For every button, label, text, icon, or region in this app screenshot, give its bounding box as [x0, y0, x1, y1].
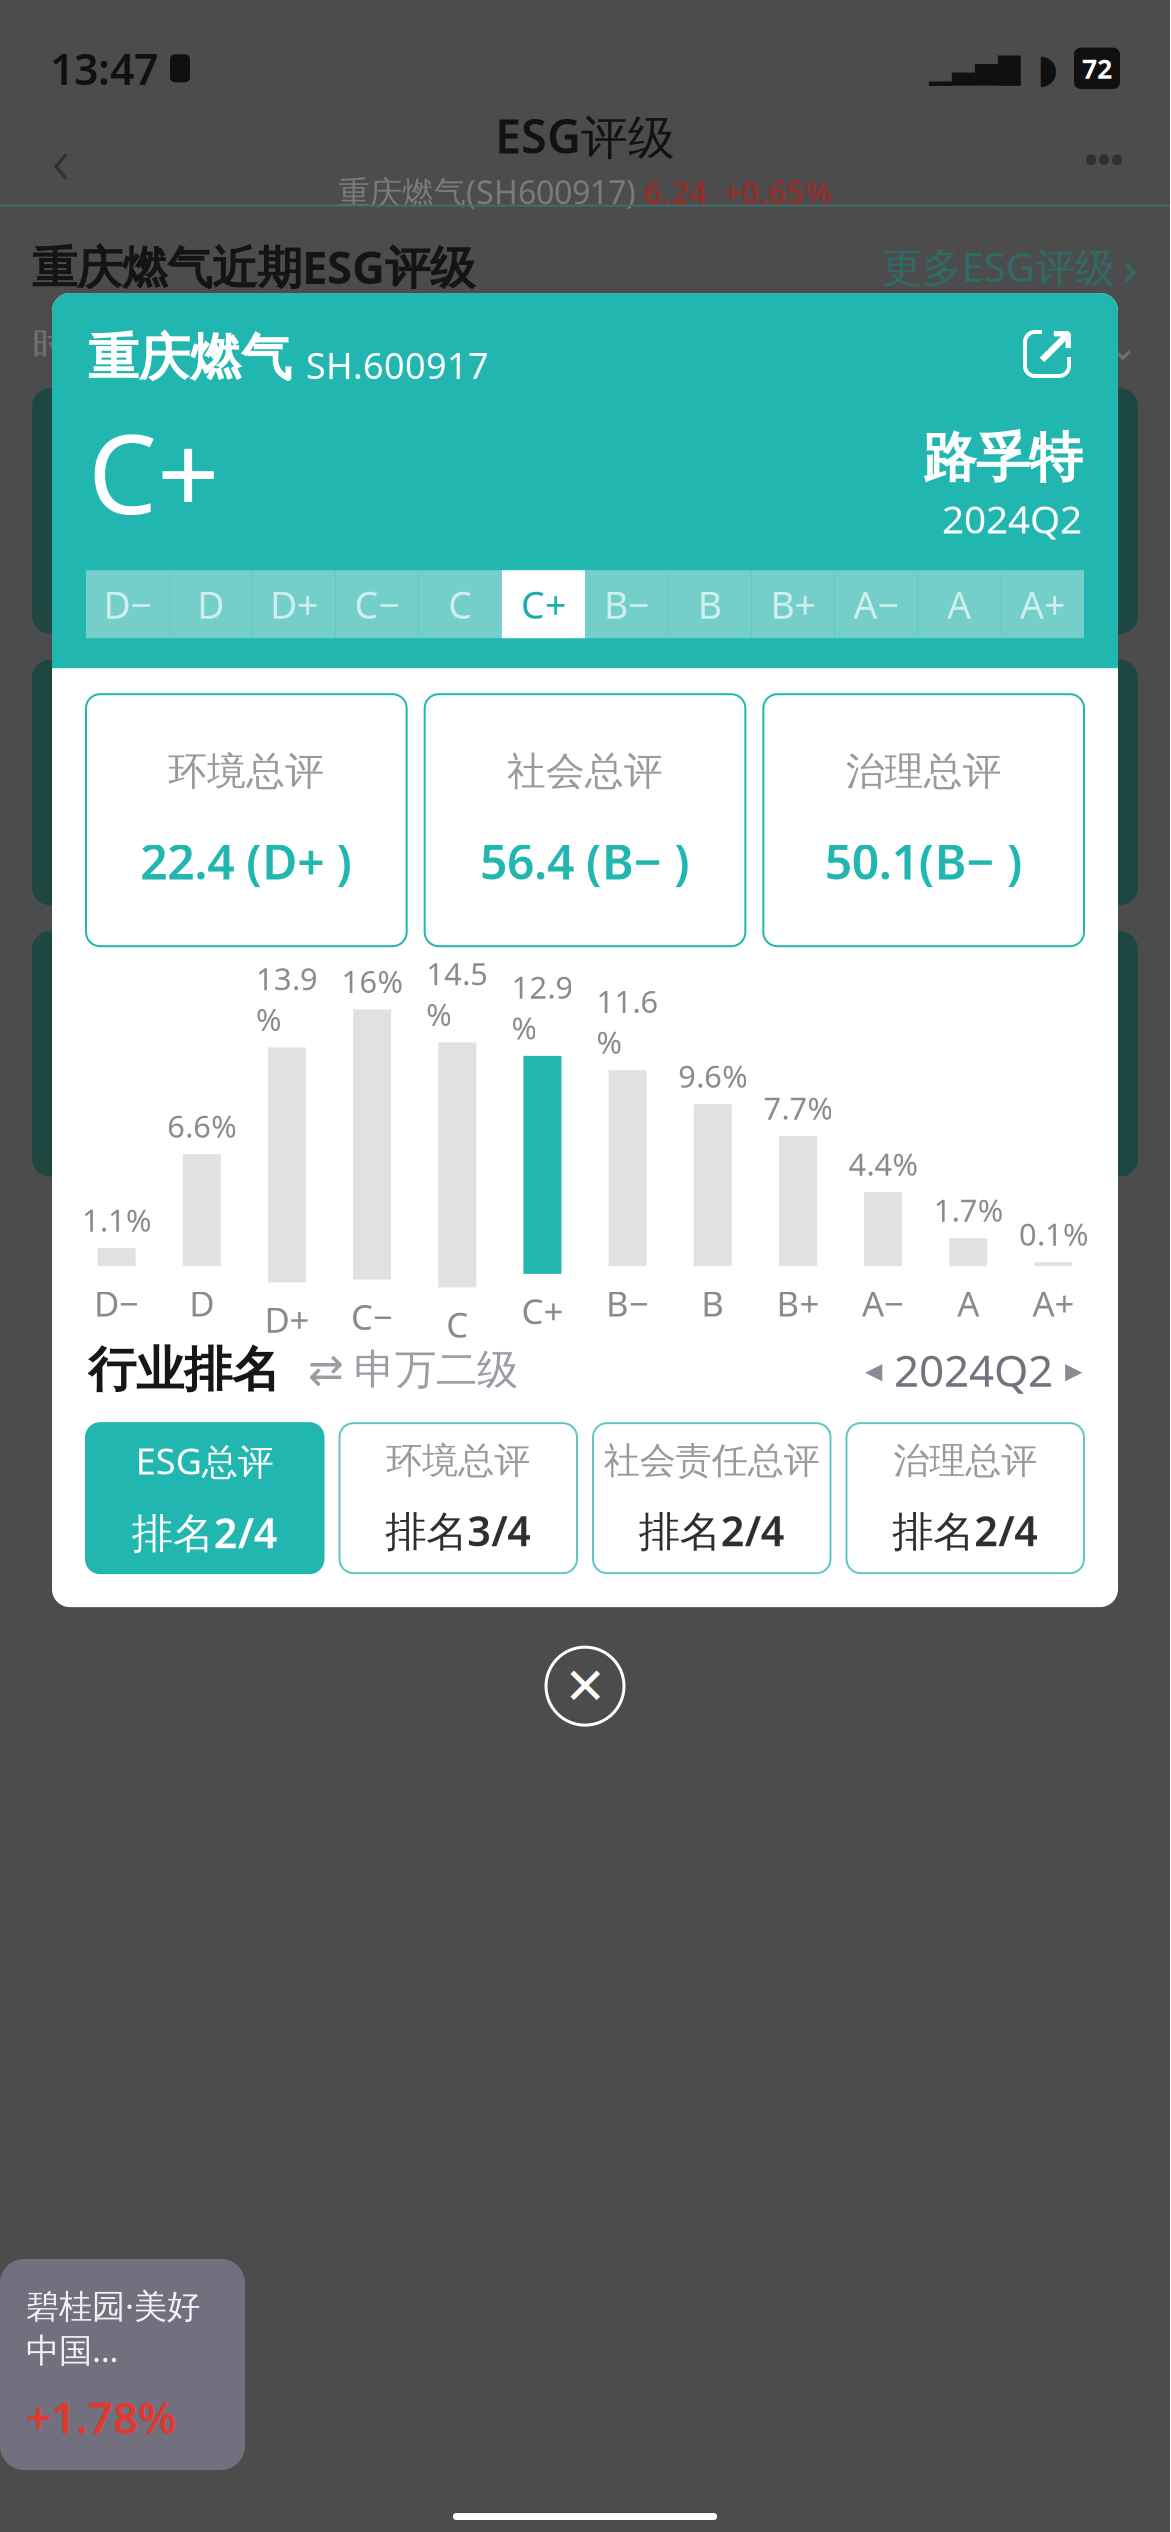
staticText: ‹ [52, 114, 70, 203]
staticText: C [448, 579, 472, 629]
button[interactable]: Next quarter [1065, 1350, 1082, 1389]
staticText: 13.9% [256, 958, 318, 1039]
staticText: D+ [264, 1296, 309, 1342]
staticText: 1.7% [934, 1189, 1003, 1230]
staticText: 排名2/4 [639, 1503, 785, 1558]
staticText: 碧桂园·美好中国… [26, 2283, 200, 2371]
staticText: 7.7% [763, 1087, 832, 1128]
button[interactable]: 更多ESG评级 [882, 235, 1138, 298]
staticText: 筛选 ⌄ [1021, 322, 1138, 368]
staticText: A+ [1020, 579, 1065, 629]
staticText: ▁▃▅▇ [929, 52, 1021, 85]
staticText: A+ [1032, 1280, 1074, 1326]
staticText: 4.4% [849, 1143, 918, 1184]
button[interactable]: 时间优先 ⌄ [32, 322, 223, 368]
staticText: 9.6% [678, 1055, 747, 1096]
button[interactable]: 社会责任总评 [593, 1423, 830, 1573]
button[interactable]: A [918, 570, 1001, 638]
button[interactable]: 治理总评 [846, 1423, 1084, 1573]
button[interactable]: 碧桂园·美好中国… [0, 2259, 245, 2470]
staticText: A [807, 555, 830, 603]
button[interactable]: A− [834, 570, 918, 638]
button[interactable]: B+ [751, 570, 834, 638]
button[interactable]: 环境总评 [339, 1423, 577, 1573]
staticText: › [1123, 235, 1138, 298]
staticText: C [107, 555, 130, 603]
button[interactable]: Share [1012, 319, 1082, 389]
staticText: A− [854, 579, 899, 629]
staticText: ↗ [1032, 317, 1077, 377]
staticText: 56.4 (B− ) [480, 829, 690, 893]
staticText: CC [212, 555, 257, 603]
staticText: 0.1% [1019, 1213, 1088, 1254]
staticText: 1.1% [82, 1199, 151, 1240]
button[interactable]: D [169, 570, 252, 638]
button[interactable]: B [668, 570, 751, 638]
staticText: B [698, 579, 722, 629]
staticText: 2024Q2 [894, 1340, 1053, 1399]
staticText: BBB [667, 555, 736, 603]
staticText: 6.24 [636, 170, 707, 213]
staticText: CC [212, 826, 257, 874]
staticText: ◗ [1037, 46, 1058, 91]
staticText: AA [912, 826, 958, 874]
button[interactable]: 社会总评 [425, 694, 745, 946]
staticText: D+ [270, 579, 318, 629]
staticText: CC [212, 1098, 257, 1146]
staticText: D− [94, 1280, 139, 1326]
button[interactable]: 筛选 ⌄ [1021, 322, 1138, 368]
button[interactable]: C+ [502, 570, 585, 638]
staticText: B [457, 1098, 480, 1146]
staticText: 社会责任总评 [604, 1439, 820, 1483]
button[interactable]: C− [335, 570, 419, 638]
staticText: B+ [776, 1280, 819, 1326]
button[interactable]: D+ [252, 570, 335, 638]
button[interactable]: More options [1064, 124, 1144, 194]
button[interactable]: C [419, 570, 502, 638]
staticText: 11.6% [597, 981, 659, 1062]
staticText: ESG总评 [136, 1437, 274, 1485]
staticText: B [701, 1280, 724, 1326]
button[interactable]: 环境总评 [86, 694, 407, 946]
staticText: B+ [770, 579, 815, 629]
staticText: A [807, 1098, 830, 1146]
staticText: 16% [342, 961, 403, 1001]
staticText: 路孚特 [923, 425, 1082, 491]
staticText: 排名2/4 [892, 1503, 1038, 1558]
button[interactable]: A+ [1001, 570, 1084, 638]
button[interactable]: Close [530, 1631, 640, 1741]
staticText: 排名2/4 [132, 1505, 278, 1560]
staticText: B− [606, 1280, 649, 1326]
staticText: AA [60, 678, 192, 805]
button[interactable]: ESG总评 [86, 1423, 323, 1573]
button[interactable]: Back [26, 124, 96, 194]
staticText: 环境总评 [386, 1439, 530, 1483]
staticText: AAA [1017, 555, 1086, 603]
button[interactable]: 治理总评 [763, 694, 1084, 946]
button[interactable]: ⇄ [308, 1344, 518, 1395]
staticText: CCC [318, 826, 385, 874]
button[interactable]: D− [86, 570, 169, 638]
staticText: 13:47 [50, 40, 158, 97]
staticText: ••• [1084, 136, 1123, 182]
staticText: 治理总评 [846, 748, 1002, 795]
staticText: AA [60, 406, 192, 534]
staticText: A− [862, 1280, 904, 1326]
staticText: C− [355, 579, 400, 629]
staticText: 6.6% [167, 1105, 236, 1146]
staticText: 申万二级 [354, 1344, 518, 1395]
staticText: 50.1(B− ) [825, 829, 1023, 893]
staticText: ▸ [1065, 1350, 1082, 1389]
staticText: 重庆燃气近期ESG评级 [32, 236, 475, 297]
button[interactable]: B− [585, 570, 668, 638]
button[interactable]: Previous quarter [865, 1350, 882, 1389]
staticText: 22.4 (D+ ) [140, 829, 352, 893]
staticText: ESG评级 [495, 104, 675, 166]
staticText: C+ [88, 399, 220, 544]
